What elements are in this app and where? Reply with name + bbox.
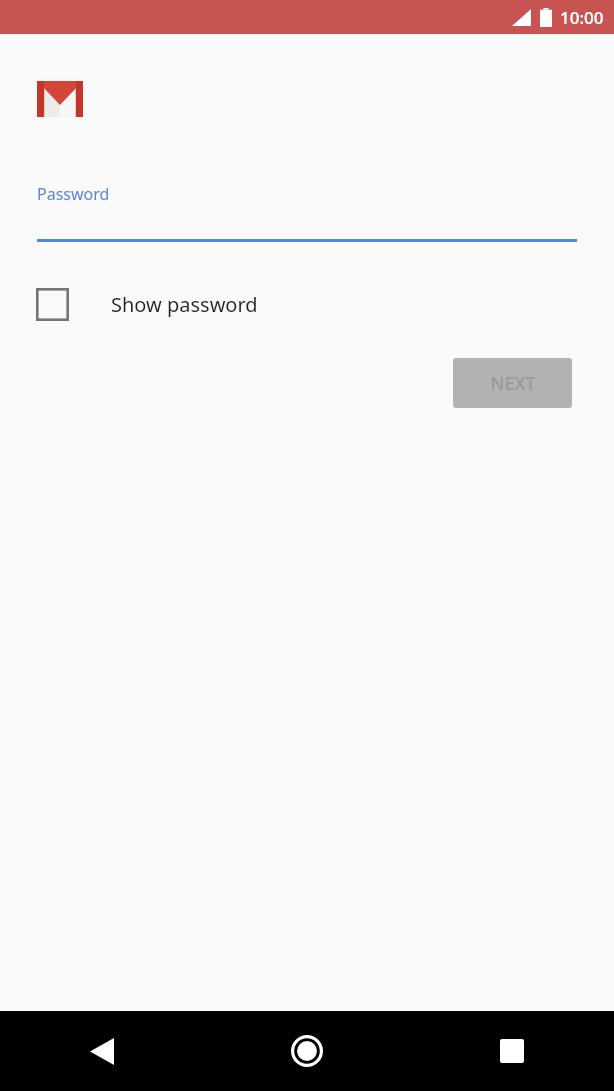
button[interactable]: NEXT [453,358,572,408]
staticText: Password [37,183,110,205]
staticText: 10:00 [560,6,604,29]
staticText: Show password [111,291,258,318]
staticText: NEXT [490,371,536,396]
button[interactable]: Back [0,1011,204,1091]
button[interactable]: Home [204,1011,409,1091]
button[interactable]: Recent apps [409,1011,614,1091]
button[interactable]: Show password [36,288,258,321]
